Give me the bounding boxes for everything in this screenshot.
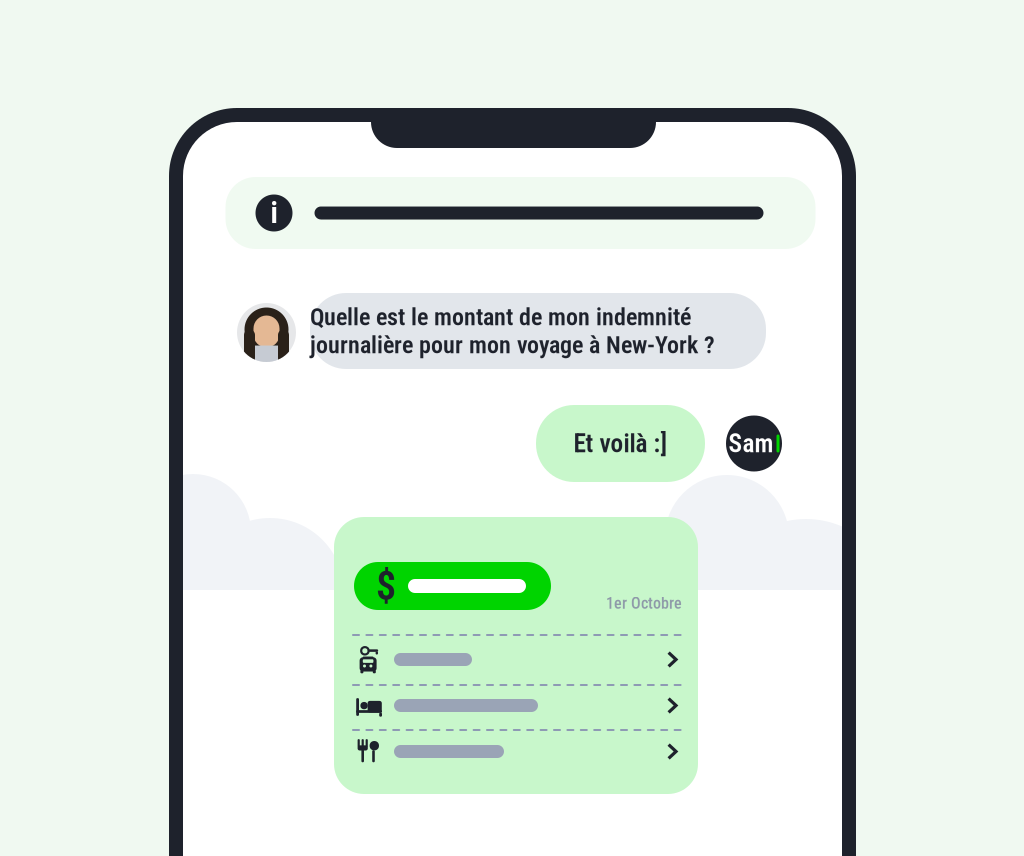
button[interactable]: Expense detail xyxy=(334,683,698,728)
staticText: Et voilà :] xyxy=(573,429,667,458)
staticText: i xyxy=(270,196,277,230)
staticText: Sam xyxy=(728,429,773,458)
button[interactable]: Information xyxy=(225,177,815,249)
staticText: 1er Octobre xyxy=(606,594,682,613)
button[interactable]: Expense detail xyxy=(334,635,698,684)
staticText: $ xyxy=(376,563,396,609)
button[interactable]: Expense detail xyxy=(334,729,698,774)
staticText: Quelle est le montant de mon indemnité j… xyxy=(310,303,715,359)
